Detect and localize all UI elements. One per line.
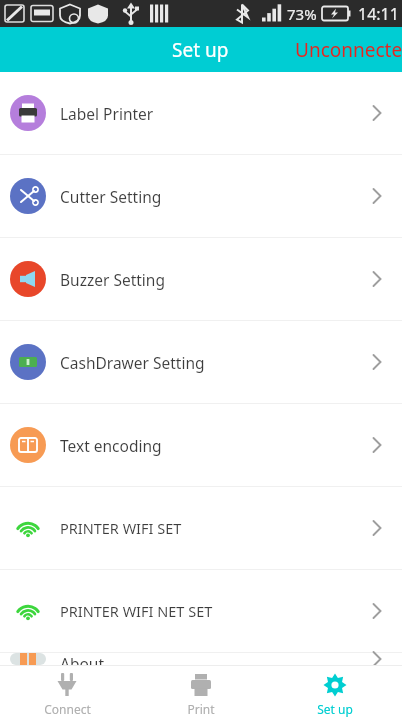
staticText: Set up (317, 701, 353, 717)
staticText: About (60, 653, 368, 665)
staticText: PRINTER WIFI SET (60, 518, 368, 538)
button[interactable]: Text encoding (0, 404, 402, 486)
button[interactable]: About (0, 653, 402, 665)
button[interactable]: Connect (0, 666, 134, 717)
staticText: Text encoding (60, 435, 368, 456)
staticText: Label Printer (60, 103, 368, 124)
button[interactable]: Label Printer (0, 72, 402, 154)
button[interactable]: Set up (268, 666, 402, 717)
staticText: 14:11 (358, 3, 399, 25)
button[interactable]: Print (134, 666, 268, 717)
staticText: Set up (172, 37, 229, 63)
staticText: Cutter Setting (60, 186, 368, 207)
staticText: PRINTER WIFI NET SET (60, 601, 368, 621)
button[interactable]: Buzzer Setting (0, 238, 402, 320)
button[interactable]: Unconnected (295, 37, 402, 63)
button[interactable]: PRINTER WIFI SET (0, 487, 402, 569)
button[interactable]: CashDrawer Setting (0, 321, 402, 403)
staticText: Buzzer Setting (60, 269, 368, 290)
button[interactable]: Cutter Setting (0, 155, 402, 237)
staticText: 73% (287, 4, 317, 24)
staticText: Print (187, 701, 215, 717)
button[interactable]: PRINTER WIFI NET SET (0, 570, 402, 652)
staticText: Connect (44, 701, 91, 717)
staticText: CashDrawer Setting (60, 352, 368, 373)
